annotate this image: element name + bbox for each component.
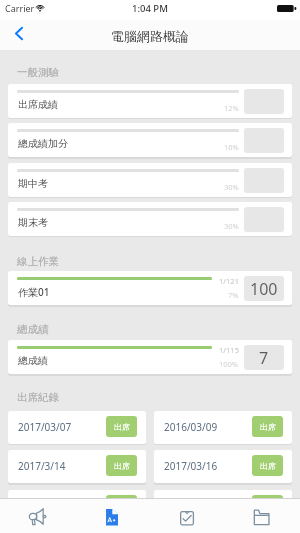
- staticText: 出席: [114, 461, 130, 471]
- staticText: 2017/03/21: [18, 499, 72, 513]
- button[interactable]: Assignments: [150, 499, 225, 533]
- button[interactable]: Grades: [75, 499, 150, 533]
- staticText: 線上作業: [17, 255, 59, 268]
- staticText: 30%: [224, 182, 239, 192]
- staticText: 作業01: [18, 285, 50, 299]
- staticText: 總成績: [18, 354, 48, 367]
- staticText: 100%: [219, 359, 239, 369]
- staticText: 12%: [224, 103, 239, 113]
- staticText: 總成績加分: [18, 137, 68, 150]
- staticText: 1/121: [219, 276, 239, 286]
- staticText: 出席: [260, 461, 276, 471]
- staticText: 2017/3/14: [18, 459, 66, 473]
- staticText: 一般測驗: [17, 66, 59, 79]
- staticText: 7: [259, 347, 269, 369]
- button[interactable]: 總成績: [8, 340, 292, 374]
- staticText: 期中考: [18, 177, 48, 190]
- staticText: 30%: [224, 221, 239, 231]
- button[interactable]: 作業01: [8, 271, 292, 305]
- button[interactable]: 2016/03/09: [154, 411, 292, 444]
- staticText: 10%: [224, 142, 239, 152]
- button[interactable]: 2017/03/07: [8, 411, 146, 444]
- staticText: 2016/03/09: [164, 420, 218, 434]
- staticText: Carrier: [5, 2, 35, 14]
- staticText: 總成績: [17, 323, 49, 336]
- button[interactable]: 2017/03/23: [154, 490, 292, 523]
- staticText: 2017/03/07: [18, 420, 72, 434]
- staticText: 7%: [228, 290, 239, 300]
- staticText: 100: [250, 278, 278, 300]
- button[interactable]: 總成績加分: [8, 123, 292, 157]
- button[interactable]: Back: [5, 20, 32, 46]
- button[interactable]: Files: [225, 499, 300, 533]
- staticText: 出席: [260, 422, 276, 432]
- staticText: 1:04 PM: [132, 2, 168, 15]
- button[interactable]: 2017/03/21: [8, 490, 146, 523]
- button[interactable]: 期末考: [8, 202, 292, 236]
- staticText: 電腦網路概論: [111, 28, 189, 44]
- button[interactable]: 期中考: [8, 163, 292, 197]
- staticText: 出席紀錄: [17, 391, 59, 404]
- button[interactable]: 出席成績: [8, 84, 292, 118]
- staticText: 2017/03/23: [164, 499, 218, 513]
- staticText: 出席: [114, 422, 130, 432]
- staticText: 2017/03/16: [164, 459, 218, 473]
- staticText: 出席成績: [18, 98, 58, 111]
- button[interactable]: 2017/03/16: [154, 450, 292, 483]
- button[interactable]: 2017/3/14: [8, 450, 146, 483]
- staticText: 1/115: [219, 345, 239, 355]
- staticText: 期末考: [18, 216, 48, 229]
- button[interactable]: Announcements: [0, 499, 75, 533]
